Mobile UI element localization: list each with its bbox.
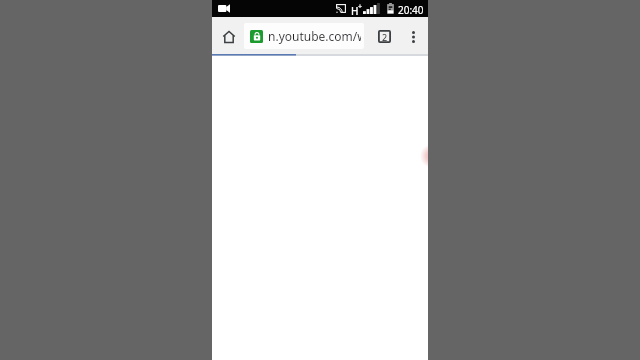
staticText: 20:40 [398, 3, 424, 17]
button[interactable]: Switch tabs [372, 17, 396, 54]
button[interactable]: More options [402, 17, 424, 54]
button[interactable]: Home [217, 17, 241, 54]
staticText: + [358, 2, 363, 12]
staticText: H [351, 4, 359, 18]
staticText: n.youtube.com/w [268, 28, 361, 44]
staticText: 2 [382, 31, 388, 43]
button[interactable]: n.youtube.com/w [244, 23, 364, 49]
